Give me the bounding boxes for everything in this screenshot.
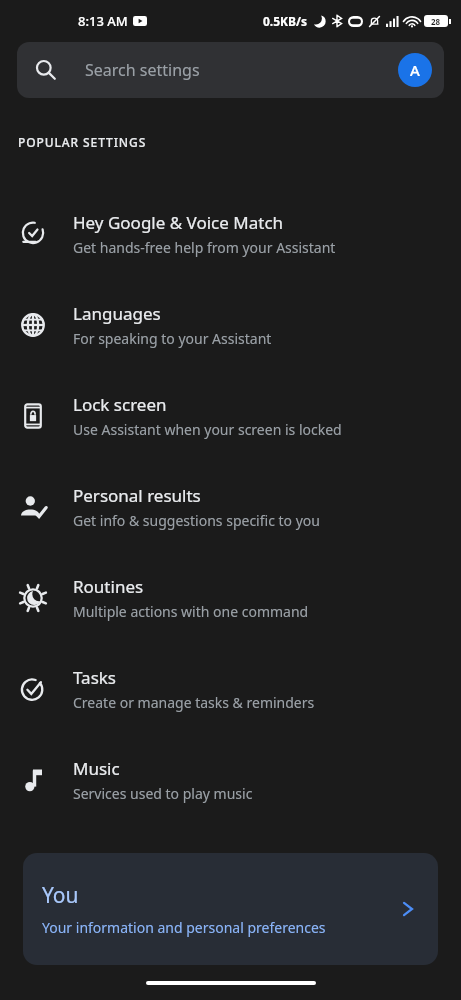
staticText: Search settings (85, 59, 200, 81)
button[interactable]: Music (0, 734, 461, 825)
staticText: A (410, 60, 420, 80)
button[interactable]: Account (398, 53, 432, 87)
staticText: Music (73, 757, 120, 780)
staticText: Services used to play music (73, 784, 253, 803)
button[interactable]: Hey Google & Voice Match (0, 188, 461, 279)
staticText: POPULAR SETTINGS (18, 134, 147, 150)
staticText: Get info & suggestions specific to you (73, 511, 320, 530)
staticText: Use Assistant when your screen is locked (73, 420, 342, 439)
staticText: Personal results (73, 484, 201, 507)
button[interactable]: Search (17, 42, 444, 98)
button[interactable]: Languages (0, 279, 461, 370)
staticText: 0.5KB/s (263, 13, 308, 29)
staticText: For speaking to your Assistant (73, 329, 272, 348)
staticText: 8:13 AM (78, 12, 128, 30)
staticText: Multiple actions with one command (73, 602, 309, 621)
staticText: Get hands-free help from your Assistant (73, 238, 336, 257)
staticText: Create or manage tasks & reminders (73, 693, 315, 712)
staticText: Your information and personal preference… (42, 918, 326, 937)
staticText: Tasks (73, 666, 116, 689)
staticText: 28 (431, 16, 441, 27)
button[interactable]: Tasks (0, 643, 461, 734)
staticText: You (42, 881, 79, 910)
staticText: Routines (73, 575, 144, 598)
staticText: Languages (73, 302, 161, 325)
other: Search (35, 59, 57, 81)
button[interactable]: Personal results (0, 461, 461, 552)
staticText: Lock screen (73, 393, 167, 416)
button[interactable]: Routines (0, 552, 461, 643)
staticText: Hey Google & Voice Match (73, 211, 284, 234)
button[interactable]: You (23, 853, 438, 965)
button[interactable]: Lock screen (0, 370, 461, 461)
